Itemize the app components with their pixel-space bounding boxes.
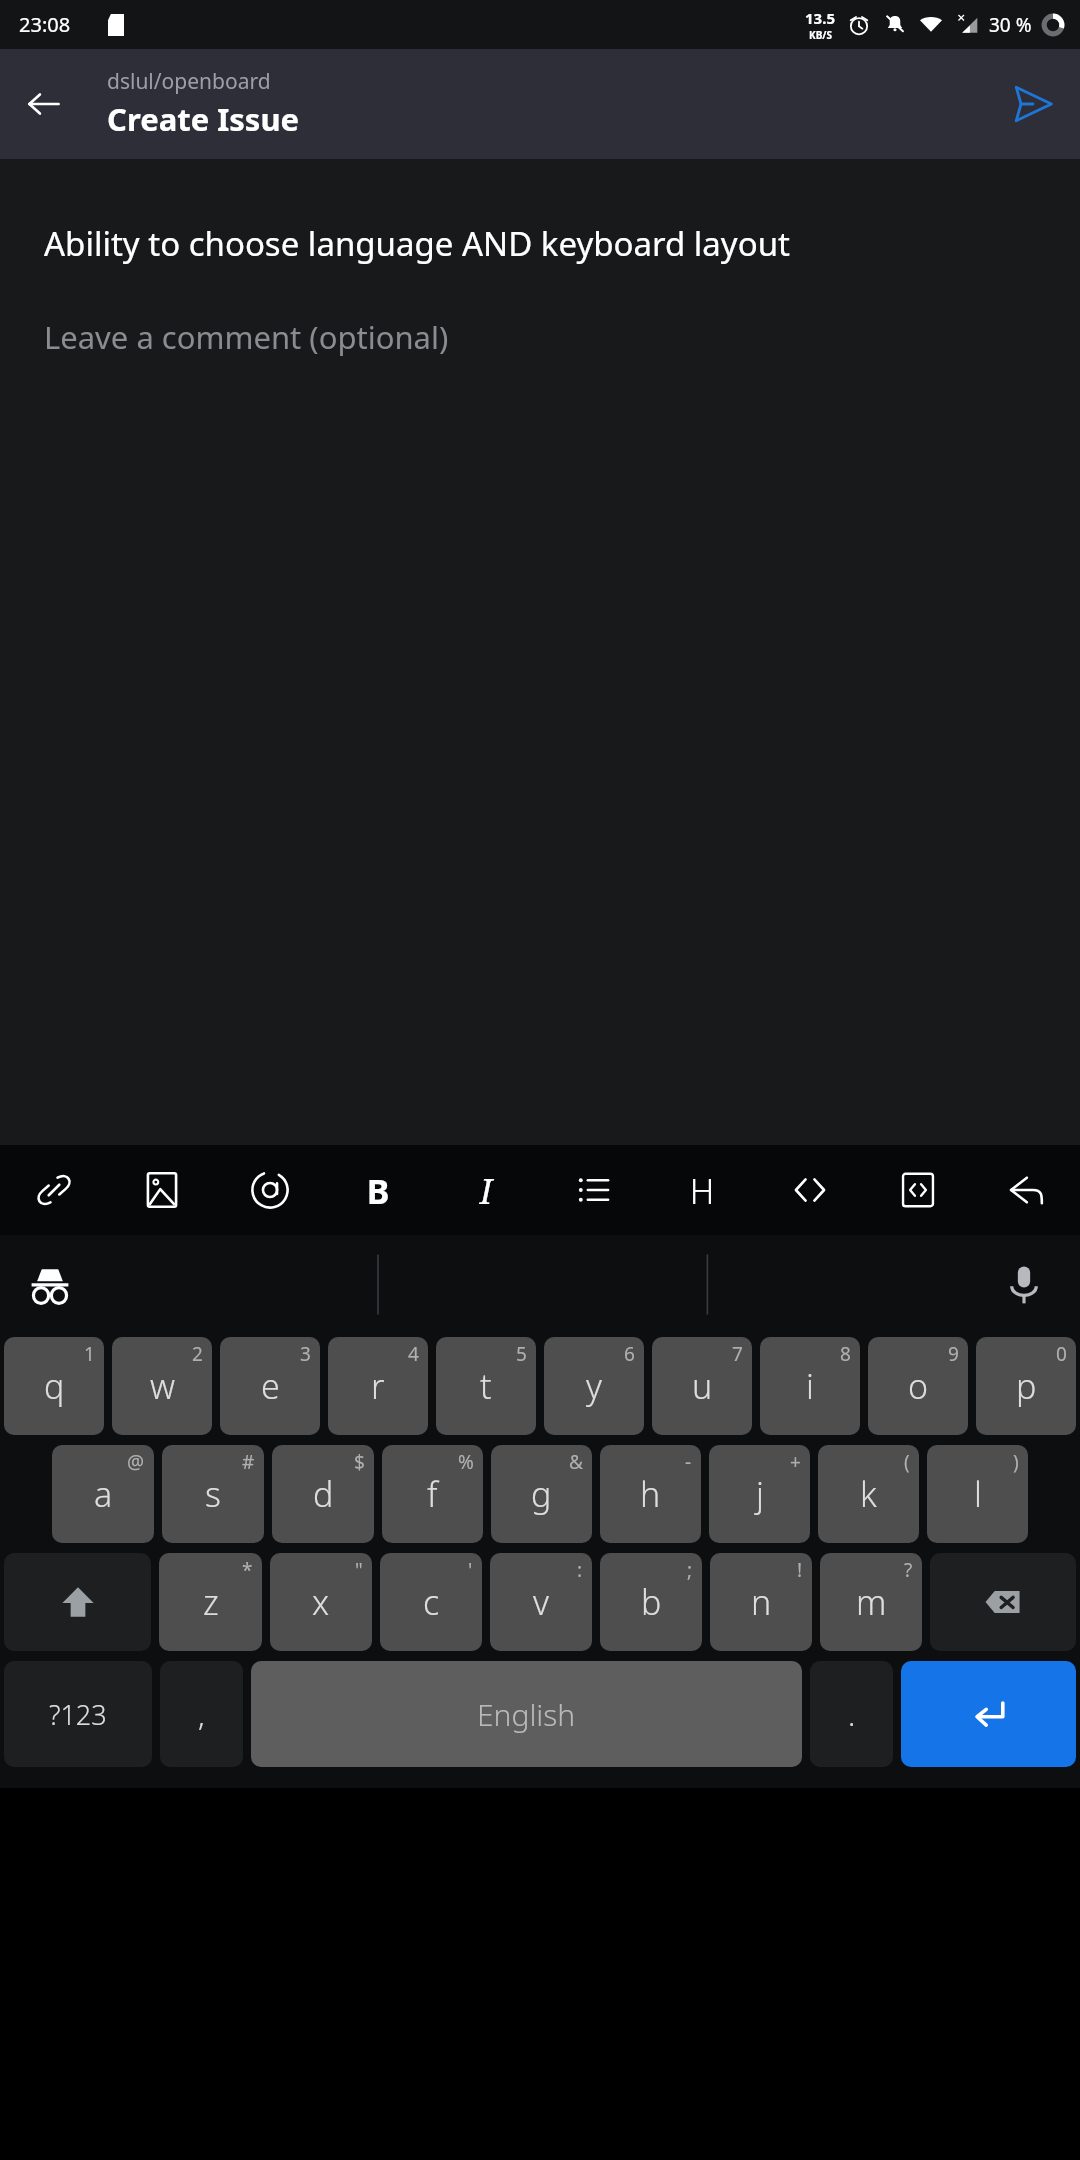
staticText: @	[127, 1449, 145, 1475]
button[interactable]: e	[220, 1337, 320, 1435]
button[interactable]: List	[540, 1145, 648, 1235]
button[interactable]: k	[818, 1445, 919, 1543]
button[interactable]: t	[436, 1337, 536, 1435]
button[interactable]: Italic	[432, 1145, 540, 1235]
button[interactable]: m	[820, 1553, 922, 1651]
staticText: dslul/openboard	[107, 67, 271, 96]
button[interactable]: Incognito	[14, 1248, 86, 1320]
button[interactable]: .	[810, 1661, 893, 1767]
staticText: B	[356, 1168, 400, 1212]
button[interactable]: g	[491, 1445, 592, 1543]
staticText: #	[242, 1449, 255, 1475]
button[interactable]: q	[4, 1337, 104, 1435]
staticText: :	[577, 1557, 583, 1583]
staticText: KB/S	[809, 28, 832, 42]
staticText: I	[464, 1168, 508, 1212]
staticText: ,	[198, 1694, 205, 1735]
button[interactable]: Send	[998, 69, 1068, 139]
button[interactable]: Code block	[864, 1145, 972, 1235]
button[interactable]: h	[600, 1445, 701, 1543]
button[interactable]: j	[709, 1445, 810, 1543]
button[interactable]: Voice input	[988, 1248, 1060, 1320]
button[interactable]: l	[927, 1445, 1028, 1543]
staticText: .	[848, 1694, 856, 1735]
staticText: r	[371, 1363, 385, 1409]
staticText: 3	[300, 1341, 311, 1367]
staticText: c	[423, 1579, 440, 1625]
button[interactable]: Reply	[972, 1145, 1080, 1235]
button[interactable]: y	[544, 1337, 644, 1435]
button[interactable]: Leave a comment (optional)	[44, 316, 449, 358]
staticText: 13.5	[805, 8, 835, 28]
button[interactable]: u	[652, 1337, 752, 1435]
button[interactable]: b	[600, 1553, 702, 1651]
button[interactable]: v	[490, 1553, 592, 1651]
staticText: 2	[192, 1341, 203, 1367]
button[interactable]: Back	[12, 72, 76, 136]
staticText: f	[427, 1471, 438, 1517]
button[interactable]: n	[710, 1553, 812, 1651]
staticText: n	[751, 1579, 772, 1625]
staticText: 7	[732, 1341, 743, 1367]
button[interactable]: Delete	[930, 1553, 1076, 1651]
button[interactable]: Bold	[324, 1145, 432, 1235]
staticText: l	[974, 1471, 982, 1517]
button[interactable]: s	[162, 1445, 264, 1543]
button[interactable]: f	[382, 1445, 483, 1543]
staticText: "	[355, 1557, 363, 1583]
staticText: y	[586, 1363, 602, 1409]
button[interactable]: Image	[108, 1145, 216, 1235]
staticText: !	[797, 1557, 803, 1583]
staticText: k	[860, 1471, 877, 1517]
button[interactable]: ?123	[4, 1661, 152, 1767]
button[interactable]: r	[328, 1337, 428, 1435]
staticText: (	[904, 1449, 910, 1475]
staticText: i	[806, 1363, 814, 1409]
staticText: 4	[408, 1341, 419, 1367]
staticText: English	[477, 1694, 576, 1735]
staticText: -	[685, 1449, 692, 1475]
staticText: s	[205, 1471, 221, 1517]
staticText: h	[640, 1471, 661, 1517]
button[interactable]: Link	[0, 1145, 108, 1235]
button[interactable]: z	[159, 1553, 262, 1651]
staticText: x	[312, 1579, 330, 1625]
staticText: w	[150, 1363, 175, 1409]
button[interactable]: Ability to choose language AND keyboard …	[44, 221, 790, 266]
staticText: o	[908, 1363, 929, 1409]
staticText: a	[94, 1471, 113, 1517]
button[interactable]: p	[976, 1337, 1076, 1435]
staticText: &	[569, 1449, 583, 1475]
button[interactable]: w	[112, 1337, 212, 1435]
staticText: t	[480, 1363, 492, 1409]
staticText: ?123	[49, 1696, 107, 1733]
staticText: %	[458, 1449, 474, 1475]
staticText: 0	[1056, 1341, 1067, 1367]
staticText: Create Issue	[107, 98, 300, 140]
button[interactable]: i	[760, 1337, 860, 1435]
button[interactable]: Mention	[216, 1145, 324, 1235]
button[interactable]: ,	[160, 1661, 243, 1767]
button[interactable]: o	[868, 1337, 968, 1435]
staticText: $	[354, 1449, 365, 1475]
button[interactable]: Shift	[4, 1553, 151, 1651]
staticText: +	[790, 1449, 801, 1475]
button[interactable]: a	[52, 1445, 154, 1543]
button[interactable]: Code	[756, 1145, 864, 1235]
staticText: 1	[84, 1341, 95, 1367]
staticText: ;	[687, 1557, 693, 1583]
staticText: u	[692, 1363, 713, 1409]
staticText: '	[468, 1557, 473, 1583]
button[interactable]: Enter	[901, 1661, 1076, 1767]
staticText: 30 %	[989, 12, 1032, 38]
staticText: 9	[948, 1341, 959, 1367]
staticText: p	[1016, 1363, 1037, 1409]
staticText: d	[313, 1471, 334, 1517]
button[interactable]: x	[270, 1553, 372, 1651]
button[interactable]: d	[272, 1445, 374, 1543]
button[interactable]: English	[251, 1661, 802, 1767]
staticText: v	[533, 1579, 549, 1625]
staticText: g	[531, 1471, 552, 1517]
button[interactable]: c	[380, 1553, 482, 1651]
button[interactable]: Heading	[648, 1145, 756, 1235]
